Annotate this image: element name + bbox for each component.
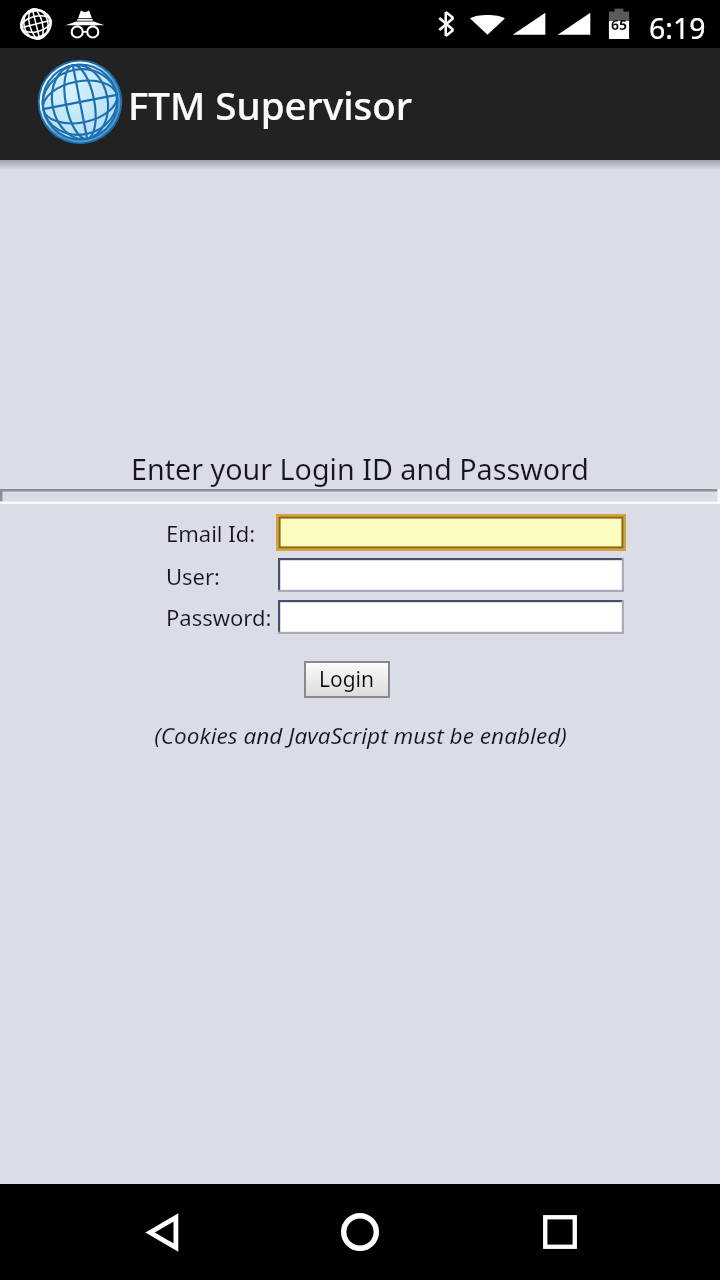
button[interactable] bbox=[278, 558, 624, 592]
other: Bluetooth bbox=[437, 9, 456, 39]
staticText: Password: bbox=[166, 602, 272, 632]
other: Mobile signal SIM 2 bbox=[557, 10, 591, 38]
staticText: FTM Supervisor bbox=[128, 79, 413, 131]
other: Mobile signal SIM 1 bbox=[512, 10, 546, 38]
staticText: Email Id: bbox=[166, 518, 256, 548]
staticText: Login bbox=[319, 665, 375, 694]
other: Browser bbox=[19, 7, 53, 41]
staticText: (Cookies and JavaScript must be enabled) bbox=[154, 720, 567, 751]
other: Wi-Fi bbox=[469, 10, 506, 38]
button[interactable] bbox=[278, 600, 624, 634]
other: Incognito mode bbox=[64, 9, 106, 39]
staticText: Enter your Login ID and Password bbox=[131, 449, 589, 488]
button[interactable]: Login bbox=[306, 663, 388, 696]
button[interactable]: Home bbox=[312, 1184, 408, 1280]
staticText: 65 bbox=[611, 15, 628, 34]
button[interactable] bbox=[276, 514, 626, 551]
button[interactable]: Back bbox=[112, 1184, 208, 1280]
staticText: 6:19 bbox=[649, 9, 706, 48]
other: Battery 65 percent bbox=[607, 8, 631, 39]
button[interactable]: Recent apps bbox=[512, 1184, 608, 1280]
staticText: User: bbox=[166, 561, 221, 591]
